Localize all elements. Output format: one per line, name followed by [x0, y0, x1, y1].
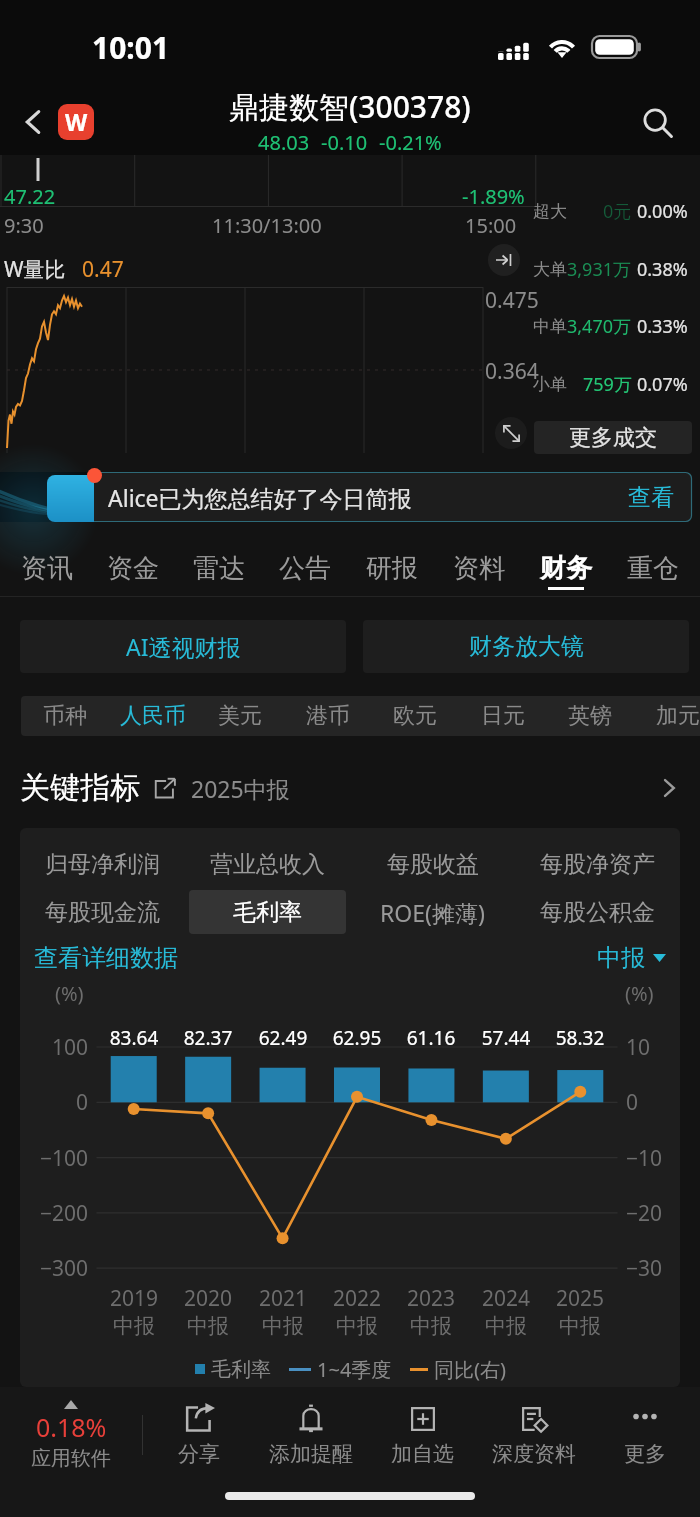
staticText: W量比	[4, 255, 66, 284]
staticText: 日元	[481, 702, 525, 730]
staticText: 港币	[306, 702, 350, 730]
button[interactable]: Alice已为您总结好了今日简报	[0, 472, 700, 522]
staticText: 财务放大镜	[469, 632, 584, 661]
staticText: 美元	[218, 702, 262, 730]
button[interactable]: AI透视财报	[20, 620, 346, 673]
button[interactable]: 人民币	[109, 696, 197, 736]
button[interactable]: 查看详细数据	[34, 943, 178, 973]
button[interactable]: 中单	[528, 298, 700, 355]
button[interactable]: 日元	[459, 696, 547, 736]
button[interactable]: Fullscreen	[495, 417, 527, 449]
button[interactable]: 更多	[589, 1387, 700, 1483]
staticText: 0.364	[485, 357, 539, 386]
staticText: 添加提醒	[269, 1441, 353, 1467]
button[interactable]: 小单	[528, 356, 700, 413]
button[interactable]: 财务放大镜	[363, 620, 689, 673]
button[interactable]: 每股公积金	[519, 890, 676, 934]
button[interactable]: 研报	[348, 534, 435, 597]
staticText: 中报	[336, 1313, 378, 1339]
button[interactable]: 更多成交	[534, 421, 692, 454]
button[interactable]: 公告	[262, 534, 348, 597]
staticText: 人民币	[120, 702, 186, 730]
button[interactable]: 关键指标	[20, 760, 680, 816]
staticText: 2025中报	[191, 773, 290, 804]
button[interactable]: 雷达	[176, 534, 262, 597]
button[interactable]: 添加提醒	[255, 1387, 367, 1483]
staticText: 归母净利润	[45, 850, 160, 879]
staticText: -0.21%	[379, 129, 442, 155]
button[interactable]: ROE(摊薄)	[354, 890, 511, 934]
staticText: ROE(摊薄)	[380, 897, 485, 928]
staticText: −200	[28, 1199, 88, 1228]
staticText: 83.64	[94, 1025, 174, 1051]
button[interactable]: 港币	[284, 696, 372, 736]
staticText: 11:30/13:00	[212, 212, 322, 239]
button[interactable]: 中报	[597, 943, 666, 973]
staticText: 每股现金流	[45, 898, 160, 927]
button[interactable]: 美元	[196, 696, 284, 736]
staticText: −100	[28, 1144, 88, 1173]
button[interactable]: 每股现金流	[24, 890, 181, 934]
staticText: 1~4季度	[317, 1356, 392, 1383]
button[interactable]: Back	[10, 99, 56, 145]
staticText: 57.44	[466, 1025, 546, 1051]
staticText: 中报	[485, 1313, 527, 1339]
button[interactable]: Wencai	[58, 104, 94, 140]
button[interactable]: 每股收益	[354, 842, 511, 886]
staticText: (%)	[625, 980, 654, 1007]
staticText: 0.07%	[637, 372, 688, 397]
button[interactable]: 加元	[634, 696, 700, 736]
staticText: 759万	[583, 372, 632, 397]
button[interactable]: 0.18%	[0, 1387, 142, 1483]
button[interactable]: 资金	[90, 534, 176, 597]
staticText: 0.47	[82, 255, 124, 284]
staticText: 58.32	[540, 1025, 620, 1051]
staticText: 2024	[482, 1284, 531, 1313]
staticText: 公告	[279, 552, 331, 585]
button[interactable]: 毛利率	[189, 890, 346, 934]
staticText: 英镑	[568, 702, 612, 730]
button[interactable]: 资料	[435, 534, 522, 597]
button[interactable]: 币种	[21, 696, 109, 736]
staticText: 分享	[178, 1441, 220, 1467]
staticText: 每股公积金	[540, 898, 655, 927]
button[interactable]: 重仓	[609, 534, 696, 597]
button[interactable]: 欧元	[371, 696, 459, 736]
button[interactable]: Search	[632, 97, 684, 149]
staticText: 100	[28, 1033, 88, 1062]
button[interactable]: 资讯	[4, 534, 90, 597]
staticText: AI透视财报	[126, 631, 241, 662]
staticText: 资料	[453, 552, 505, 585]
staticText: 深度资料	[492, 1441, 576, 1467]
staticText: -0.10	[321, 129, 368, 155]
button[interactable]: 超大	[528, 183, 700, 240]
staticText: 营业总收入	[210, 850, 325, 879]
button[interactable]: 归母净利润	[24, 842, 181, 886]
staticText: 中报	[559, 1313, 601, 1339]
button[interactable]: 加自选	[367, 1387, 478, 1483]
staticText: 2021	[259, 1284, 308, 1313]
button[interactable]: 每股净资产	[519, 842, 676, 886]
staticText: 10	[626, 1033, 651, 1062]
button[interactable]: 深度资料	[478, 1387, 589, 1483]
staticText: 0	[626, 1088, 639, 1117]
staticText: 每股净资产	[540, 850, 655, 879]
button[interactable]: Next	[488, 244, 520, 276]
button[interactable]: 财务	[522, 534, 609, 597]
button[interactable]: 营业总收入	[189, 842, 346, 886]
staticText: 更多成交	[569, 424, 657, 452]
staticText: 2023	[407, 1284, 456, 1313]
staticText: 中报	[597, 943, 645, 973]
button[interactable]: 英镑	[546, 696, 634, 736]
staticText: 0.475	[485, 286, 539, 315]
staticText: −30	[626, 1254, 663, 1283]
button[interactable]: 分享	[143, 1387, 255, 1483]
staticText: 62.49	[243, 1025, 323, 1051]
staticText: 2019	[110, 1284, 159, 1313]
staticText: 2025	[556, 1284, 605, 1313]
staticText: 61.16	[391, 1025, 471, 1051]
staticText: 47.22	[4, 183, 56, 210]
button[interactable]: 大单	[528, 241, 700, 298]
staticText: 中报	[410, 1313, 452, 1339]
staticText: 更多	[624, 1441, 666, 1467]
